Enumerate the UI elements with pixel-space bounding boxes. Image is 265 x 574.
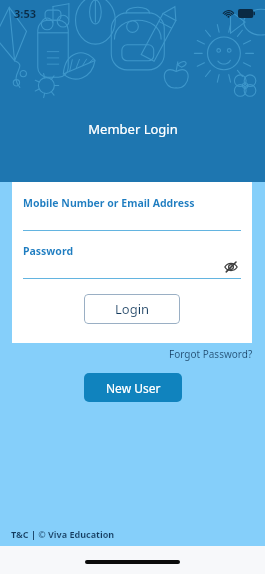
button[interactable]: Forgot Password? [169,345,265,363]
staticText: T&C | © Viva Education [11,528,115,540]
button[interactable]: New User [84,373,182,402]
button[interactable]: T&C | © Viva Education [11,528,115,540]
staticText: Password [23,244,74,258]
staticText: Login [115,300,150,318]
staticText: Mobile Number or Email Address [23,196,195,210]
button[interactable]: Login [84,294,180,324]
staticText: Member Login [88,120,178,138]
staticText: New User [106,380,161,396]
button[interactable]: Mobile Number or Email Address [12,196,252,231]
button[interactable]: Show password [222,258,240,276]
button[interactable]: Password [12,244,252,279]
staticText: Forgot Password? [169,347,253,361]
staticText: 3:53 [14,6,36,21]
